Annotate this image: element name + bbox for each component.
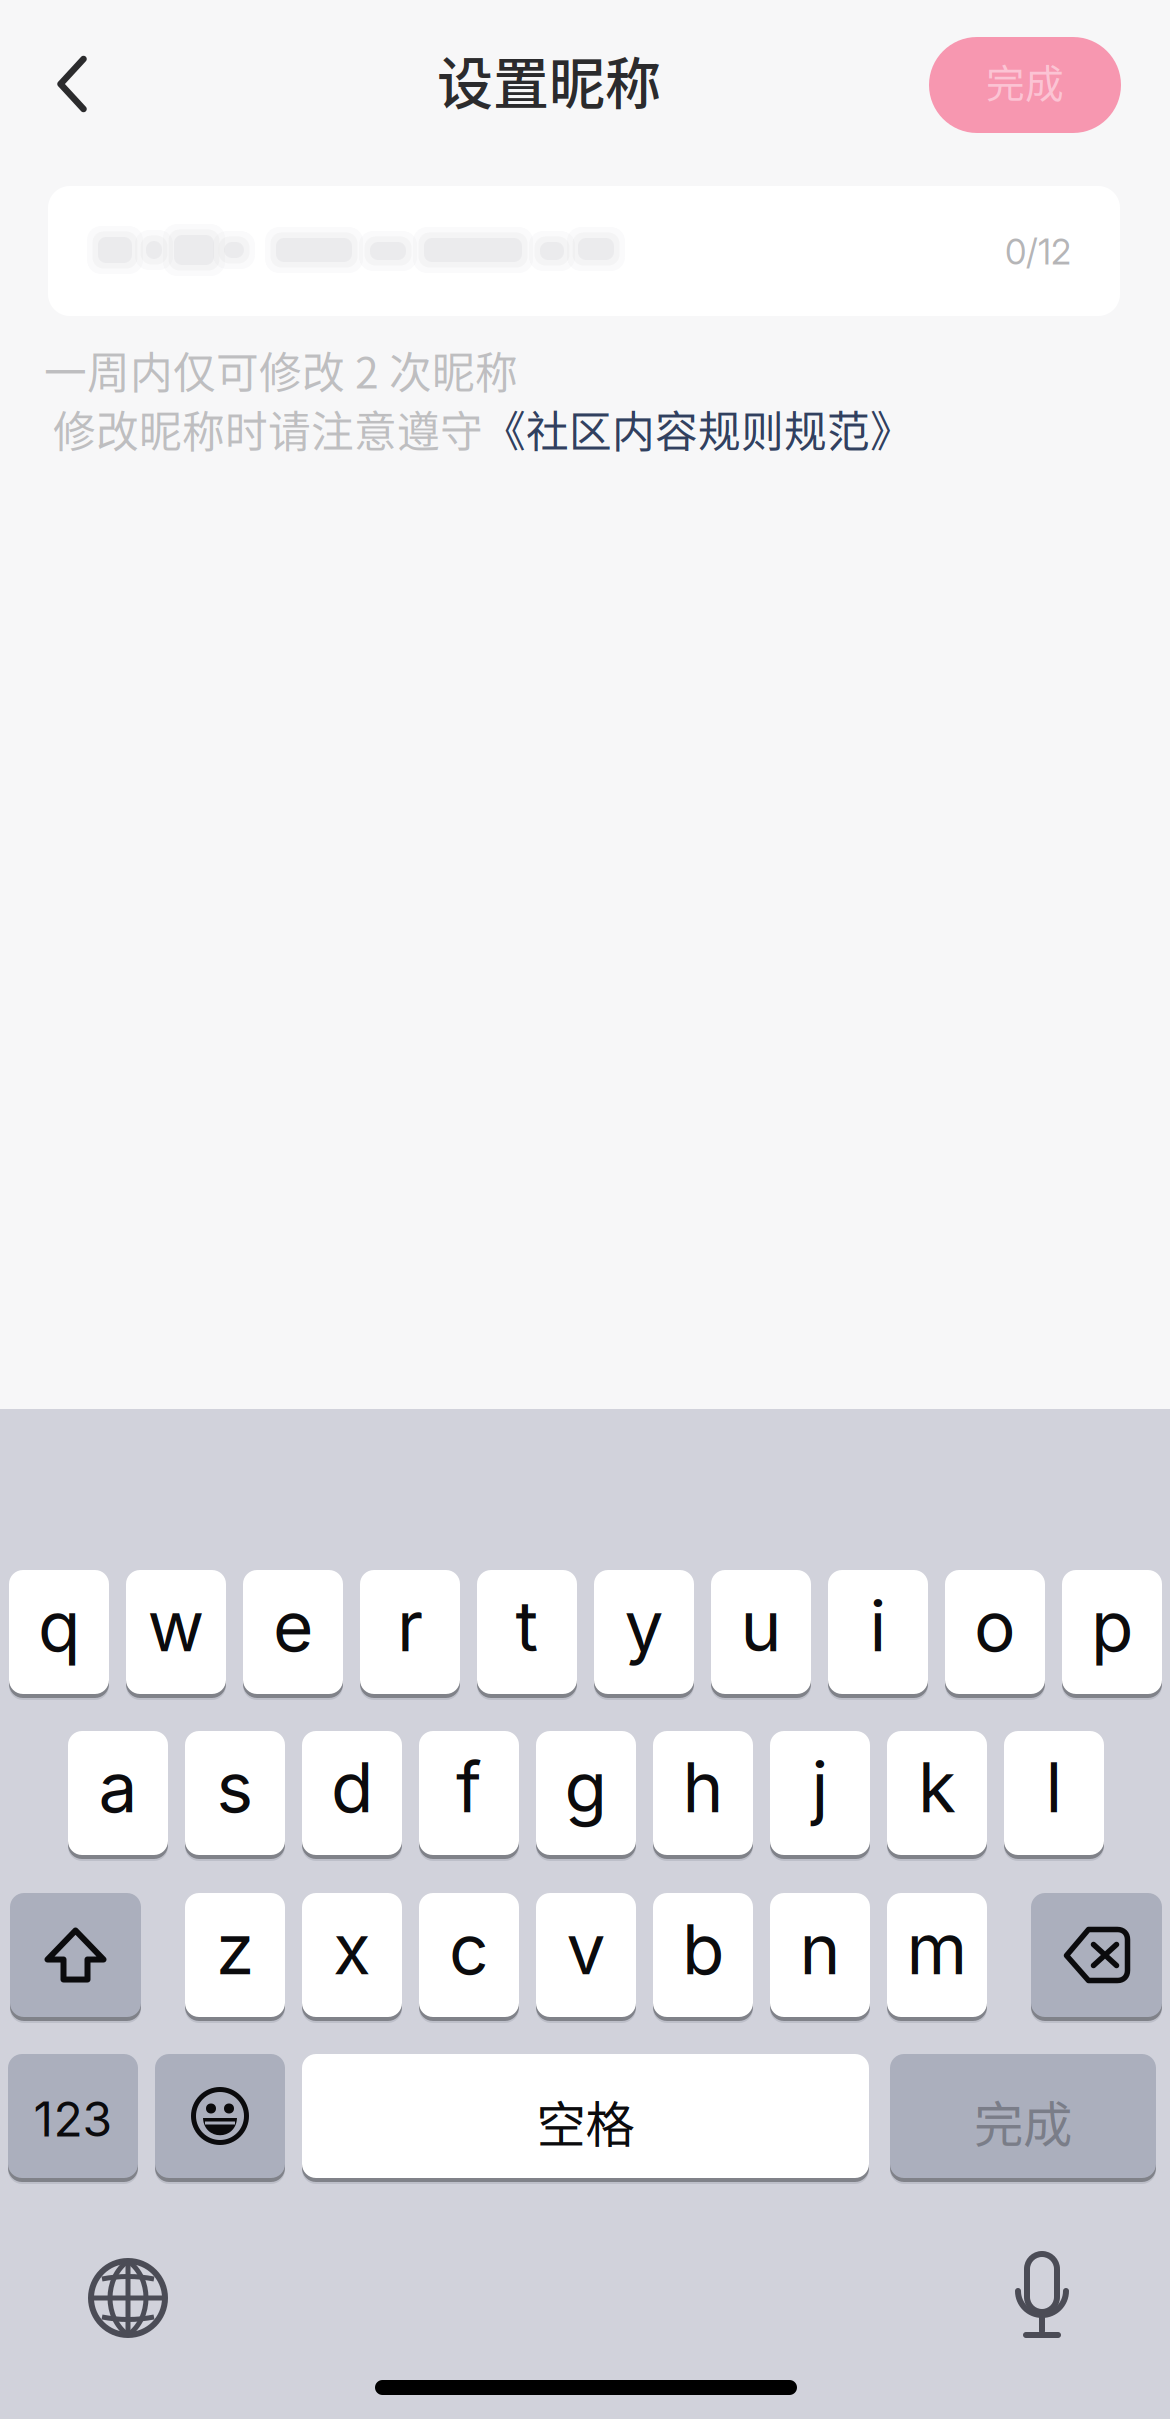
staticText: 《社区内容规则规范》 [483, 398, 913, 460]
button[interactable]: t [477, 1570, 577, 1700]
button[interactable]: e [243, 1570, 343, 1700]
button[interactable]: p [1062, 1570, 1162, 1700]
staticText: o [974, 1584, 1016, 1668]
button[interactable]: d [302, 1731, 402, 1861]
staticText: i [869, 1584, 886, 1668]
staticText: 一周内仅可修改 2 次昵称 [44, 339, 518, 401]
button[interactable]: q [9, 1570, 109, 1700]
button[interactable]: g [536, 1731, 636, 1861]
button[interactable]: r [360, 1570, 460, 1700]
button[interactable]: Shift [10, 1893, 141, 2023]
staticText: p [1091, 1584, 1133, 1668]
button[interactable]: w [126, 1570, 226, 1700]
button[interactable]: u [711, 1570, 811, 1700]
button[interactable]: Back [22, 34, 122, 134]
button[interactable]: j [770, 1731, 870, 1861]
staticText: 0/12 [1005, 231, 1071, 273]
button[interactable]: 空格 [302, 2054, 869, 2184]
staticText: g [564, 1745, 607, 1829]
button[interactable]: Emoji [155, 2054, 285, 2184]
staticText: v [566, 1907, 605, 1991]
button[interactable]: v [536, 1893, 636, 2023]
button[interactable]: o [945, 1570, 1045, 1700]
button[interactable]: Nickname [48, 186, 1120, 316]
staticText: w [147, 1584, 204, 1668]
button[interactable]: z [185, 1893, 285, 2023]
button[interactable]: a [68, 1731, 168, 1861]
button[interactable]: 完成 [929, 37, 1121, 133]
staticText: z [216, 1907, 254, 1991]
button[interactable]: k [887, 1731, 987, 1861]
button[interactable]: l [1004, 1731, 1104, 1861]
staticText: u [740, 1584, 781, 1668]
staticText: x [333, 1907, 371, 1991]
staticText: 完成 [986, 53, 1064, 109]
staticText: 修改昵称时请注意遵守 [53, 398, 483, 460]
staticText: s [216, 1745, 253, 1829]
button[interactable]: Delete [1031, 1893, 1162, 2023]
button[interactable]: s [185, 1731, 285, 1861]
staticText: f [456, 1745, 482, 1829]
staticText: c [449, 1907, 489, 1991]
staticText: r [397, 1584, 423, 1668]
staticText: j [811, 1745, 828, 1829]
staticText: l [1045, 1745, 1062, 1829]
staticText: 123 [33, 2090, 112, 2148]
staticText: k [918, 1745, 956, 1829]
button[interactable]: c [419, 1893, 519, 2023]
button[interactable]: h [653, 1731, 753, 1861]
button[interactable]: y [594, 1570, 694, 1700]
staticText: b [682, 1907, 724, 1991]
button[interactable]: 修改昵称时请注意遵守《社区内容规则规范》 [53, 398, 913, 460]
staticText: 完成 [974, 2085, 1072, 2157]
button[interactable]: Dictation [982, 2236, 1102, 2356]
staticText: y [624, 1584, 663, 1668]
button[interactable]: f [419, 1731, 519, 1861]
staticText: m [906, 1907, 967, 1991]
staticText: n [799, 1907, 840, 1991]
staticText: 设置昵称 [437, 39, 661, 120]
button[interactable]: i [828, 1570, 928, 1700]
button[interactable]: 123 [8, 2054, 138, 2184]
staticText: a [98, 1745, 137, 1829]
button[interactable]: n [770, 1893, 870, 2023]
button[interactable]: 完成 [890, 2054, 1156, 2184]
staticText: h [682, 1745, 723, 1829]
staticText: e [273, 1584, 313, 1668]
button[interactable]: b [653, 1893, 753, 2023]
staticText: t [515, 1584, 538, 1668]
button[interactable]: x [302, 1893, 402, 2023]
button[interactable]: Next keyboard [68, 2238, 188, 2358]
staticText: 空格 [536, 2085, 634, 2157]
staticText: d [331, 1745, 373, 1829]
button[interactable]: m [887, 1893, 987, 2023]
staticText: q [38, 1584, 80, 1668]
